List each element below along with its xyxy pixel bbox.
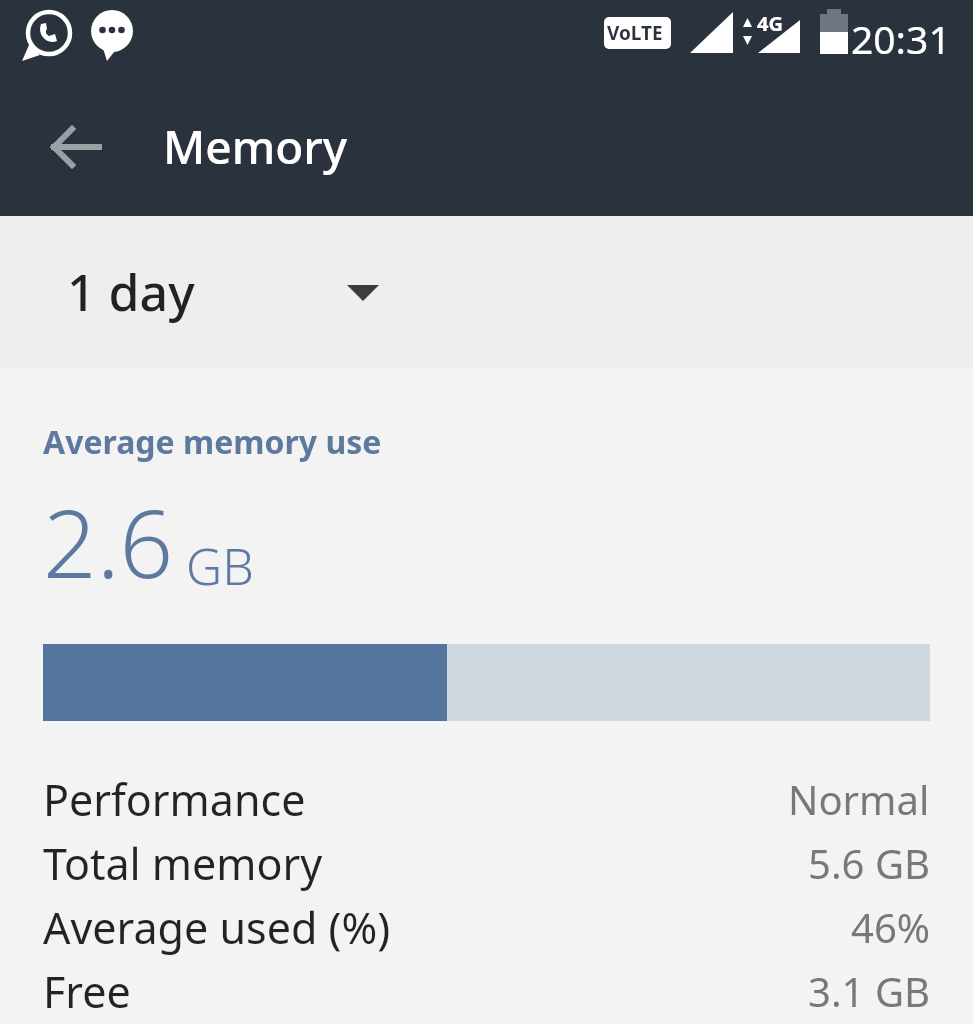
staticText: GB (186, 532, 254, 600)
button[interactable]: 1 day (0, 216, 973, 367)
staticText: 20:31 (851, 12, 951, 65)
staticText: VoLTE (607, 20, 663, 46)
button[interactable]: Free (0, 959, 973, 1023)
button[interactable]: Back (36, 107, 116, 187)
staticText: Performance (43, 770, 306, 829)
staticText: Total memory (43, 834, 323, 893)
staticText: 4G (757, 10, 783, 37)
staticText: 5.6 GB (808, 836, 930, 890)
staticText: 46% (851, 900, 930, 954)
staticText: Average used (%) (43, 898, 391, 957)
button[interactable]: Average used (%) (0, 895, 973, 959)
staticText: 1 day (67, 258, 195, 326)
staticText: 3.1 GB (808, 964, 930, 1018)
staticText: Normal (788, 772, 930, 826)
staticText: 2.6 (43, 478, 174, 606)
staticText: Free (43, 962, 131, 1021)
other: Change time range (347, 283, 379, 301)
button[interactable]: Performance (0, 767, 973, 831)
staticText: Average memory use (43, 420, 382, 464)
staticText: Memory (163, 115, 348, 178)
button[interactable]: Total memory (0, 831, 973, 895)
